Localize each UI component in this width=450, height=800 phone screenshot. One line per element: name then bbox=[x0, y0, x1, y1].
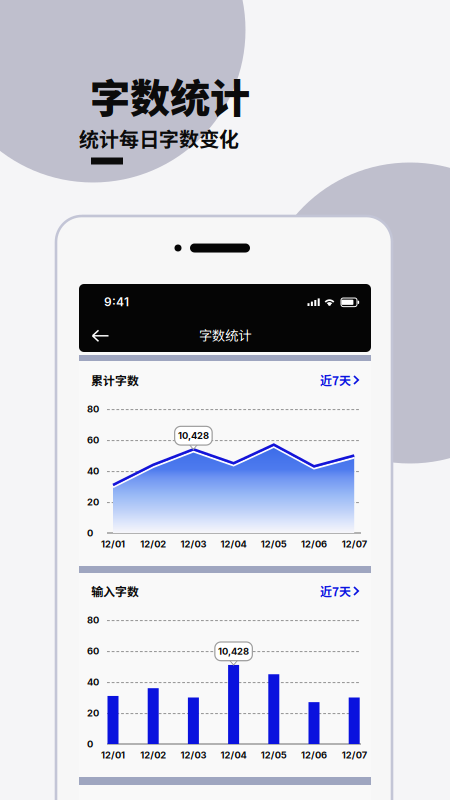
staticText: 80 bbox=[87, 403, 99, 415]
staticText: 12/02 bbox=[140, 538, 166, 550]
button[interactable]: Back bbox=[90, 320, 128, 352]
staticText: 12/01 bbox=[101, 538, 125, 550]
button[interactable]: 近7天 bbox=[320, 582, 360, 600]
staticText: 字数统计 bbox=[90, 66, 250, 124]
staticText: 20 bbox=[87, 496, 99, 508]
staticText: 统计每日字数变化 bbox=[79, 123, 239, 152]
staticText: 输入字数 bbox=[91, 582, 139, 600]
staticText: 12/01 bbox=[101, 749, 125, 761]
staticText: 60 bbox=[87, 434, 99, 446]
staticText: 近7天 bbox=[320, 582, 351, 600]
staticText: 12/05 bbox=[261, 538, 287, 550]
staticText: 12/07 bbox=[342, 538, 367, 550]
staticText: 字数统计 bbox=[199, 325, 251, 344]
staticText: 60 bbox=[87, 645, 99, 657]
staticText: 12/06 bbox=[301, 538, 327, 550]
staticText: 12/04 bbox=[221, 749, 247, 761]
staticText: 12/07 bbox=[342, 749, 367, 761]
staticText: 20 bbox=[87, 707, 99, 719]
staticText: 12/05 bbox=[261, 749, 287, 761]
staticText: 0 bbox=[87, 527, 93, 539]
staticText: 10,428 bbox=[218, 646, 249, 657]
staticText: 12/04 bbox=[221, 538, 247, 550]
staticText: 9:41 bbox=[104, 295, 129, 309]
staticText: 近7天 bbox=[320, 371, 351, 389]
staticText: 12/02 bbox=[140, 749, 166, 761]
staticText: 80 bbox=[87, 614, 99, 626]
button[interactable]: 近7天 bbox=[320, 371, 360, 389]
staticText: 累计字数 bbox=[91, 371, 139, 389]
staticText: 40 bbox=[87, 465, 99, 477]
staticText: 12/03 bbox=[180, 538, 206, 550]
staticText: 40 bbox=[87, 676, 99, 688]
staticText: 12/03 bbox=[180, 749, 206, 761]
staticText: 12/06 bbox=[301, 749, 327, 761]
staticText: 0 bbox=[87, 738, 93, 750]
staticText: 10,428 bbox=[178, 430, 209, 441]
